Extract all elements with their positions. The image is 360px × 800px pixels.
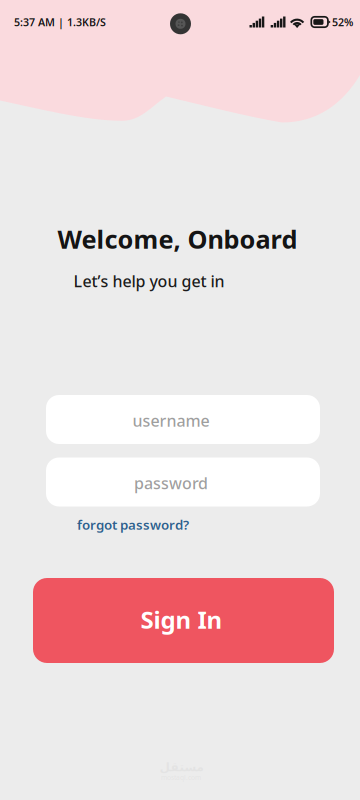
staticText: 52% — [332, 15, 353, 29]
staticText: username — [132, 410, 209, 431]
staticText: password — [134, 472, 208, 494]
staticText: Let’s help you get in — [73, 270, 224, 292]
staticText: مستقل — [159, 760, 203, 774]
button[interactable]: password — [46, 457, 320, 506]
button[interactable]: username — [46, 395, 320, 444]
staticText: 5:37 AM | 1.3KB/S — [14, 15, 106, 29]
button[interactable]: forgot password? — [74, 513, 192, 536]
button[interactable]: Sign In — [33, 578, 334, 663]
staticText: Sign In — [140, 604, 222, 635]
staticText: forgot password? — [77, 516, 189, 533]
staticText: Welcome, Onboard — [57, 222, 297, 256]
